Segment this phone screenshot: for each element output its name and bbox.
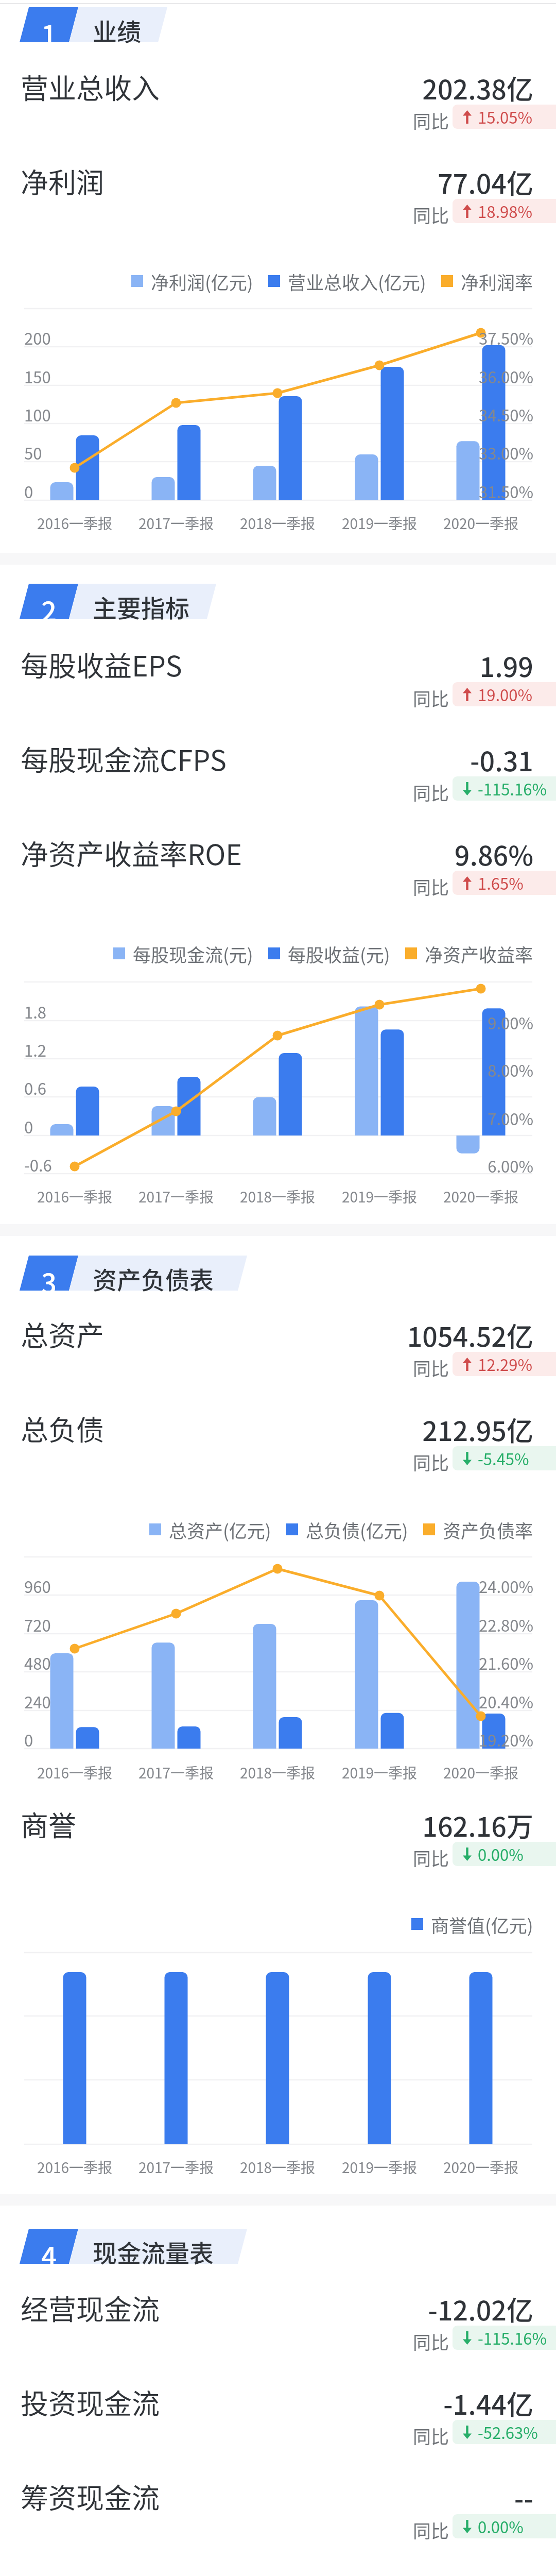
- staticText: 主要指标: [93, 589, 189, 624]
- staticText: 同比: [89, 1449, 449, 1475]
- staticText: -12.02亿: [173, 2290, 533, 2328]
- staticText: 37.50%: [173, 326, 533, 349]
- staticText: 2016一季报: [0, 1186, 178, 1207]
- staticText: -52.63%: [478, 2420, 538, 2444]
- staticText: 2017一季报: [73, 2157, 279, 2178]
- staticText: 净资产收益率: [425, 941, 533, 967]
- staticText: 2018一季报: [175, 1186, 380, 1207]
- staticText: 同比: [89, 2422, 449, 2449]
- staticText: 21.60%: [173, 1651, 533, 1674]
- staticText: 同比: [89, 779, 449, 805]
- button[interactable]: 经营现金流: [0, 2281, 556, 2359]
- staticText: 总资产: [21, 1314, 104, 1354]
- staticText: 7.00%: [173, 1107, 533, 1130]
- staticText: 同比: [89, 2328, 449, 2354]
- staticText: 2020一季报: [378, 1186, 556, 1207]
- staticText: 2017一季报: [73, 1762, 279, 1783]
- staticText: 总负债: [21, 1408, 104, 1448]
- staticText: 202.38亿: [173, 69, 533, 107]
- staticText: 净资产收益率ROE: [21, 833, 242, 873]
- staticText: -0.31: [173, 740, 533, 779]
- staticText: 投资现金流: [21, 2382, 160, 2422]
- staticText: 净利润率: [461, 268, 533, 295]
- staticText: 0.6: [24, 1076, 47, 1099]
- staticText: 1.8: [24, 1000, 47, 1023]
- staticText: 0.00%: [478, 2515, 524, 2538]
- staticText: 同比: [89, 685, 449, 711]
- staticText: 50: [24, 441, 42, 464]
- staticText: -1.44亿: [173, 2384, 533, 2422]
- staticText: 2018一季报: [175, 2157, 380, 2178]
- staticText: 0: [24, 480, 33, 503]
- staticText: 商誉: [21, 1804, 76, 1844]
- button[interactable]: 每股收益EPS: [0, 638, 556, 715]
- button[interactable]: 2: [0, 584, 556, 619]
- staticText: 同比: [89, 107, 449, 133]
- staticText: 商誉值(亿元): [431, 1911, 533, 1938]
- staticText: 2019一季报: [276, 2157, 482, 2178]
- staticText: 每股现金流(元): [133, 941, 253, 967]
- staticText: 77.04亿: [173, 163, 533, 201]
- staticText: 同比: [89, 873, 449, 900]
- staticText: 营业总收入(亿元): [288, 268, 426, 295]
- button[interactable]: 投资现金流: [0, 2376, 556, 2453]
- staticText: 150: [24, 365, 51, 388]
- button[interactable]: 净利润: [0, 155, 556, 232]
- staticText: 同比: [89, 201, 449, 228]
- staticText: 200: [24, 326, 51, 349]
- staticText: 0: [24, 1115, 33, 1138]
- staticText: 1.2: [24, 1038, 47, 1061]
- button[interactable]: 筹资现金流: [0, 2470, 556, 2547]
- staticText: 总负债(亿元): [306, 1517, 408, 1543]
- staticText: 总资产(亿元): [169, 1517, 271, 1543]
- button[interactable]: 营业总收入: [0, 60, 556, 138]
- staticText: 33.00%: [173, 441, 533, 464]
- staticText: 12.29%: [478, 1352, 532, 1376]
- button[interactable]: 每股现金流CFPS: [0, 732, 556, 809]
- staticText: 18.98%: [478, 199, 532, 223]
- staticText: 每股收益EPS: [21, 644, 182, 684]
- staticText: 240: [24, 1690, 51, 1713]
- staticText: 2016一季报: [0, 2157, 178, 2178]
- staticText: 2016一季报: [0, 1762, 178, 1783]
- staticText: 2016一季报: [0, 513, 178, 534]
- staticText: 6.00%: [173, 1154, 533, 1177]
- staticText: 每股现金流CFPS: [21, 738, 227, 778]
- staticText: 4: [18, 2235, 80, 2270]
- staticText: 9.86%: [173, 835, 533, 873]
- button[interactable]: 净资产收益率ROE: [0, 826, 556, 904]
- staticText: 19.00%: [478, 683, 532, 706]
- staticText: 22.80%: [173, 1613, 533, 1636]
- staticText: 净利润(亿元): [151, 268, 253, 295]
- staticText: 筹资现金流: [21, 2476, 160, 2516]
- button[interactable]: 1: [0, 7, 556, 42]
- button[interactable]: 3: [0, 1256, 556, 1291]
- staticText: 同比: [89, 2517, 449, 2543]
- staticText: 同比: [89, 1844, 449, 1871]
- staticText: 0: [24, 1728, 33, 1751]
- staticText: 24.00%: [173, 1574, 533, 1598]
- button[interactable]: 商誉: [0, 1798, 556, 1875]
- staticText: 19.20%: [173, 1728, 533, 1751]
- staticText: 2019一季报: [276, 1186, 482, 1207]
- staticText: 31.50%: [173, 480, 533, 503]
- button[interactable]: 总资产: [0, 1308, 556, 1385]
- staticText: -115.16%: [478, 777, 547, 800]
- staticText: 2018一季报: [175, 1762, 380, 1783]
- staticText: 1.65%: [478, 871, 524, 894]
- staticText: 36.00%: [173, 365, 533, 388]
- staticText: -0.6: [24, 1153, 52, 1176]
- staticText: 现金流量表: [93, 2234, 214, 2269]
- staticText: 960: [24, 1574, 51, 1598]
- staticText: -5.45%: [478, 1447, 529, 1470]
- staticText: 2019一季报: [276, 1762, 482, 1783]
- button[interactable]: 总负债: [0, 1402, 556, 1479]
- staticText: 2018一季报: [175, 513, 380, 534]
- staticText: 2020一季报: [378, 1762, 556, 1783]
- staticText: 1.99: [173, 646, 533, 685]
- staticText: 8.00%: [173, 1058, 533, 1081]
- staticText: 2019一季报: [276, 513, 482, 534]
- button[interactable]: 4: [0, 2229, 556, 2264]
- staticText: 20.40%: [173, 1690, 533, 1713]
- staticText: 0.00%: [478, 1842, 524, 1866]
